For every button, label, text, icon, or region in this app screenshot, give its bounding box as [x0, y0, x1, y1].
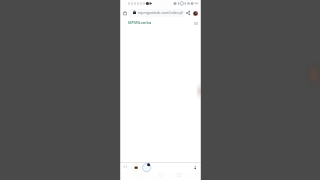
button[interactable]: Forward	[133, 163, 142, 172]
button[interactable]: Home	[121, 9, 129, 17]
button[interactable]: Menu	[192, 19, 200, 27]
button[interactable]: Back	[121, 163, 130, 172]
button[interactable]	[128, 9, 185, 17]
staticText: MPMGomba	[128, 20, 152, 25]
button[interactable]: Share	[184, 9, 192, 17]
button[interactable]: Account	[191, 9, 199, 17]
button[interactable]: More options	[191, 163, 200, 172]
staticText: mpmgombak.com/index.php/2/mmj/0bc	[138, 10, 183, 15]
